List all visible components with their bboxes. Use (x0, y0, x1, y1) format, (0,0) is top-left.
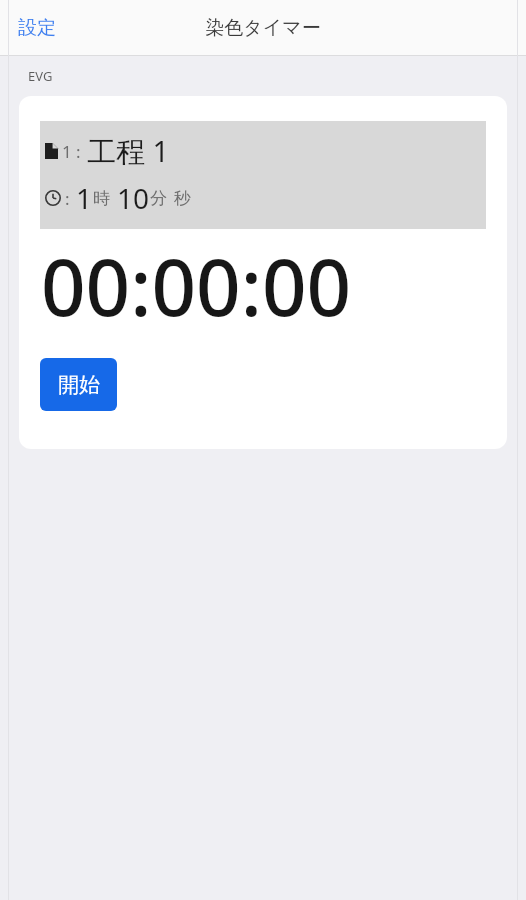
staticText: 工程 1 (87, 131, 170, 171)
button[interactable]: Step (19, 96, 507, 449)
staticText: 秒 (174, 188, 191, 209)
staticText: 00:00:00 (41, 233, 352, 338)
staticText: 分 (150, 188, 167, 209)
staticText: 1 (76, 179, 93, 217)
staticText: 設定 (18, 16, 56, 40)
staticText: 10 (117, 179, 150, 217)
staticText: EVG (28, 67, 53, 85)
staticText: 時 (93, 188, 110, 209)
staticText: : (76, 140, 81, 163)
staticText: 染色タイマー (205, 16, 321, 40)
other: Step (45, 143, 58, 159)
staticText: 開始 (58, 372, 100, 398)
other: Duration (45, 190, 61, 206)
button[interactable]: 開始 (40, 358, 117, 411)
button[interactable]: 設定 (10, 10, 64, 46)
staticText: 1 (62, 140, 72, 163)
staticText: : (65, 187, 70, 210)
